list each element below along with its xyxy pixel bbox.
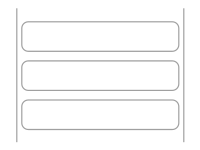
button[interactable] [22, 22, 179, 51]
button[interactable] [22, 100, 179, 129]
button[interactable] [22, 61, 179, 90]
